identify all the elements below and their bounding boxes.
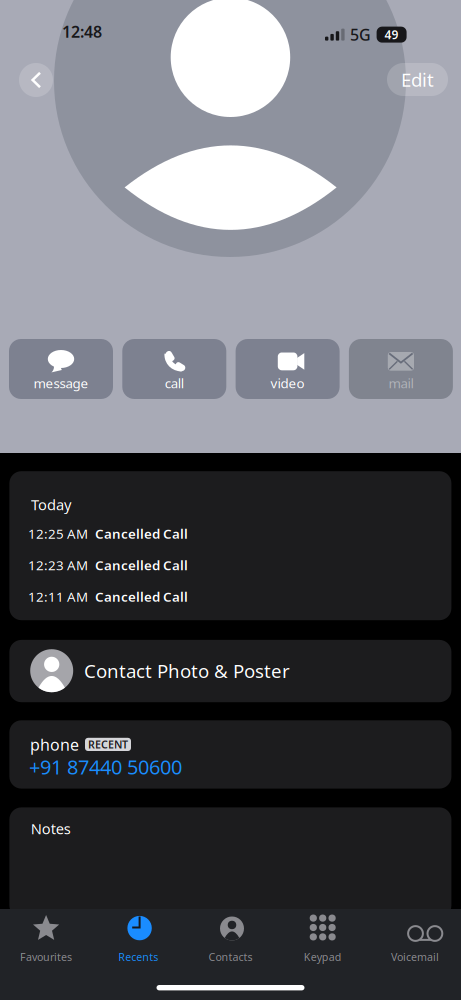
button[interactable]: Recents [92, 914, 184, 969]
button[interactable]: Contact Photo & Poster [9, 640, 451, 702]
button[interactable]: Edit [387, 63, 448, 96]
staticText: Voicemail [391, 950, 439, 964]
staticText: RECENT [88, 737, 128, 751]
staticText: Recents [118, 950, 158, 964]
staticText: Cancelled Call [95, 588, 188, 605]
staticText: 12:25 AM [28, 525, 88, 542]
staticText: 12:48 [62, 21, 102, 42]
staticText: call [165, 374, 184, 392]
staticText: Cancelled Call [95, 525, 188, 542]
staticText: 5G [350, 24, 371, 45]
staticText: Keypad [304, 950, 342, 964]
button[interactable]: mail [349, 339, 453, 399]
button[interactable]: Back [19, 63, 53, 97]
staticText: phone [30, 734, 79, 755]
staticText: 49 [385, 27, 399, 43]
button[interactable]: Favourites [0, 914, 92, 969]
staticText: +91 87440 50600 [29, 753, 182, 780]
staticText: message [33, 374, 88, 392]
staticText: Favourites [20, 950, 72, 964]
staticText: Today [31, 495, 71, 514]
staticText: Notes [31, 819, 71, 838]
button[interactable]: Keypad [277, 914, 369, 969]
staticText: mail [388, 374, 413, 392]
staticText: Edit [401, 67, 434, 92]
staticText: video [271, 374, 305, 392]
staticText: 12:23 AM [28, 556, 88, 574]
staticText: 12:11 AM [28, 588, 88, 605]
button[interactable]: phone [9, 720, 451, 789]
button[interactable]: video [236, 339, 340, 399]
staticText: Cancelled Call [95, 556, 188, 574]
button[interactable]: Voicemail [369, 914, 461, 969]
button[interactable]: message [9, 339, 113, 399]
staticText: Contacts [208, 950, 252, 964]
button[interactable]: call [122, 339, 226, 399]
button[interactable]: Notes [9, 807, 451, 917]
staticText: Contact Photo & Poster [84, 658, 290, 683]
button[interactable]: Contacts [184, 914, 277, 969]
